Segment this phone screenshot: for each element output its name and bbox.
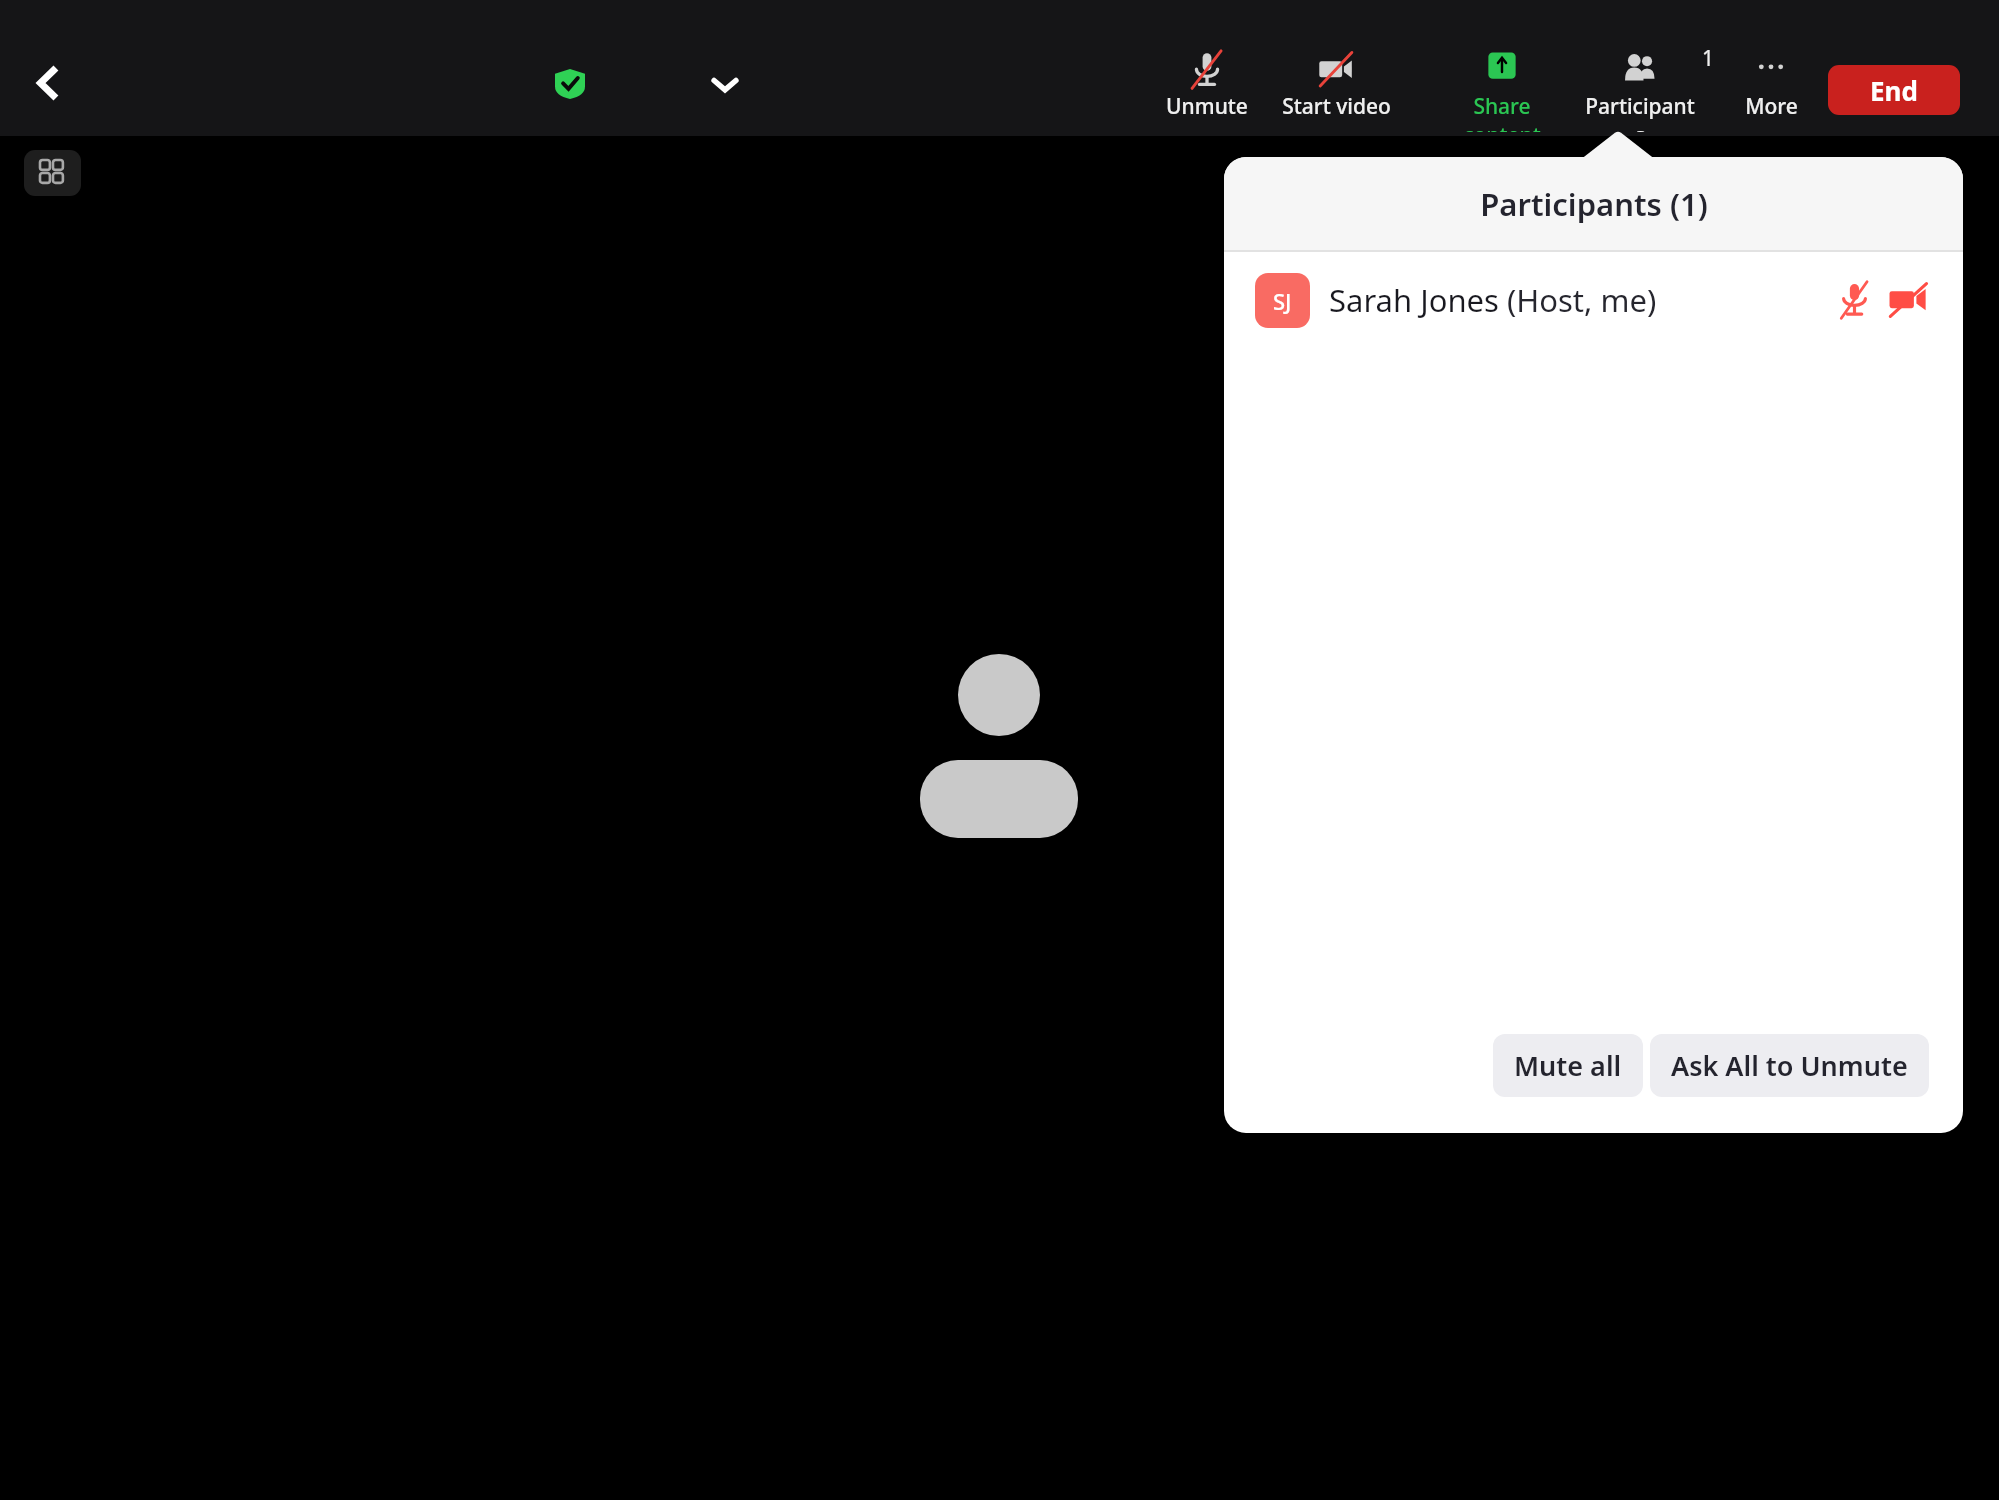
button[interactable]: Ask All to Unmute [1650,1034,1929,1097]
staticText: Participants (1) [1480,183,1708,225]
button[interactable]: Change view [24,150,81,196]
staticText: 1 [1702,44,1715,73]
staticText: Share content [1443,92,1561,132]
button[interactable]: Encryption [550,64,590,104]
button[interactable]: SJ [1224,252,1963,348]
button[interactable]: Meeting information [698,58,752,112]
staticText: (Host, me) [1507,279,1657,321]
staticText: Participants [1581,92,1699,132]
staticText: Unmute [1166,92,1248,121]
staticText: Ask All to Unmute [1671,1047,1908,1084]
button[interactable]: Mute all [1493,1034,1643,1097]
button[interactable]: Share content [1443,48,1561,132]
staticText: Mute all [1514,1047,1622,1084]
button[interactable]: More [1712,48,1830,132]
button[interactable]: End [1828,65,1960,115]
staticText: Start video [1282,92,1391,121]
button[interactable]: 1 [1581,48,1699,132]
staticText: More [1745,92,1798,121]
staticText: End [1870,73,1918,108]
button[interactable]: Unmute [1148,48,1266,132]
button[interactable]: Back [20,55,76,111]
button[interactable]: Start video [1277,48,1395,132]
staticText: SJ [1273,286,1292,316]
staticText: Sarah Jones [1329,279,1507,321]
